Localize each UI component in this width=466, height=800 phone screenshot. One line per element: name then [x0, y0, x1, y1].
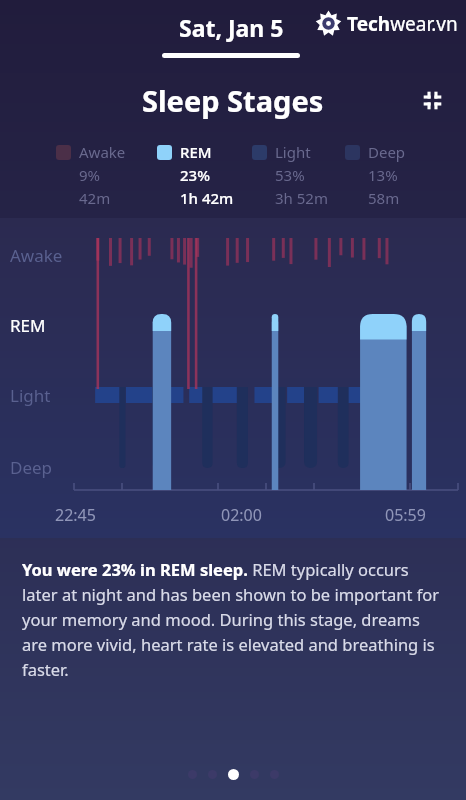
staticText: Sleep Stages: [142, 81, 324, 120]
staticText: 02:00: [221, 504, 262, 526]
staticText: 9%: [79, 165, 101, 185]
staticText: 1h 42m: [180, 188, 234, 208]
staticText: 05:59: [385, 504, 426, 526]
staticText: Light: [275, 142, 311, 162]
button[interactable]: REM: [157, 142, 234, 208]
button[interactable]: Page 2: [208, 770, 217, 779]
staticText: 13%: [368, 165, 398, 185]
staticText: REM: [10, 314, 46, 337]
staticText: Light: [10, 384, 51, 407]
staticText: 23%: [180, 165, 210, 185]
button[interactable]: Page 5: [270, 770, 279, 779]
staticText: Techwear.vn: [347, 11, 458, 37]
staticText: Deep: [10, 456, 53, 479]
button[interactable]: Deep: [345, 142, 406, 208]
staticText: 3h 52m: [275, 188, 328, 208]
staticText: 53%: [275, 165, 305, 185]
staticText: Awake: [79, 142, 126, 162]
staticText: REM: [180, 142, 212, 162]
staticText: 22:45: [55, 504, 96, 526]
staticText: Deep: [368, 142, 406, 162]
staticText: 58m: [368, 188, 400, 208]
button[interactable]: Awake: [56, 142, 126, 208]
staticText: Sat, Jan 5: [179, 12, 284, 43]
button[interactable]: Page 3: [228, 769, 239, 780]
button[interactable]: Page 4: [250, 770, 259, 779]
staticText: You were 23% in REM sleep. REM typically…: [22, 558, 444, 680]
staticText: 42m: [79, 188, 111, 208]
staticText: Awake: [10, 244, 63, 267]
button[interactable]: Page 1: [188, 770, 197, 779]
button[interactable]: Exit full screen: [414, 82, 450, 118]
button[interactable]: Light: [252, 142, 328, 208]
